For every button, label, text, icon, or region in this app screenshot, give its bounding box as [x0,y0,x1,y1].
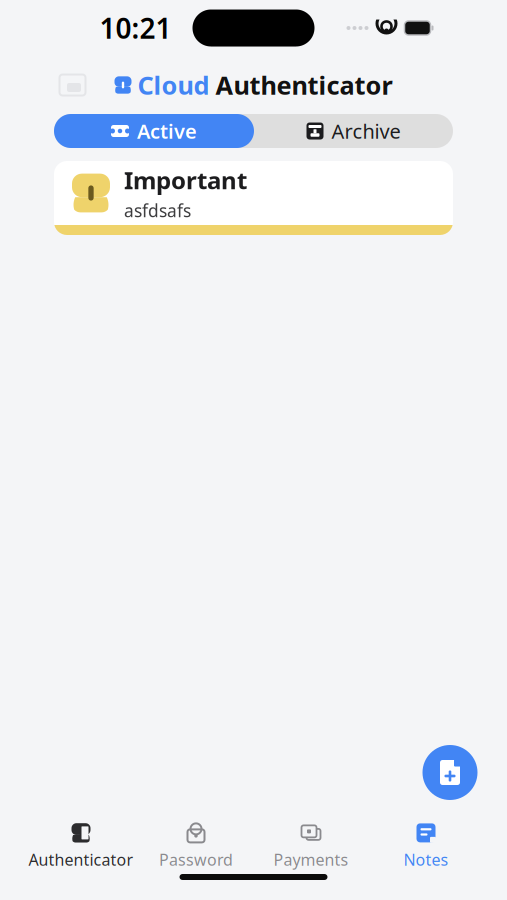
staticText: Password [159,849,233,870]
button[interactable]: Active [54,114,254,148]
button[interactable]: Important [54,161,453,235]
staticText: Archive [331,118,400,144]
staticText: 10:21 [99,9,171,47]
button[interactable]: Notes [368,820,483,872]
staticText: Active [137,118,197,144]
staticText: Authenticator [28,849,133,870]
staticText: Payments [273,849,348,870]
button[interactable]: Payments [253,820,368,872]
staticText: Authenticator [215,68,392,102]
button[interactable]: Password [138,820,253,872]
button[interactable]: Archive [254,114,453,148]
staticText: Notes [403,849,448,870]
button[interactable]: Authenticator [23,820,138,872]
staticText: Important [124,164,247,196]
staticText: Cloud [137,68,209,102]
staticText: asfdsafs [124,199,191,222]
button[interactable]: New note [422,745,477,800]
button[interactable]: Profile image [57,72,87,98]
